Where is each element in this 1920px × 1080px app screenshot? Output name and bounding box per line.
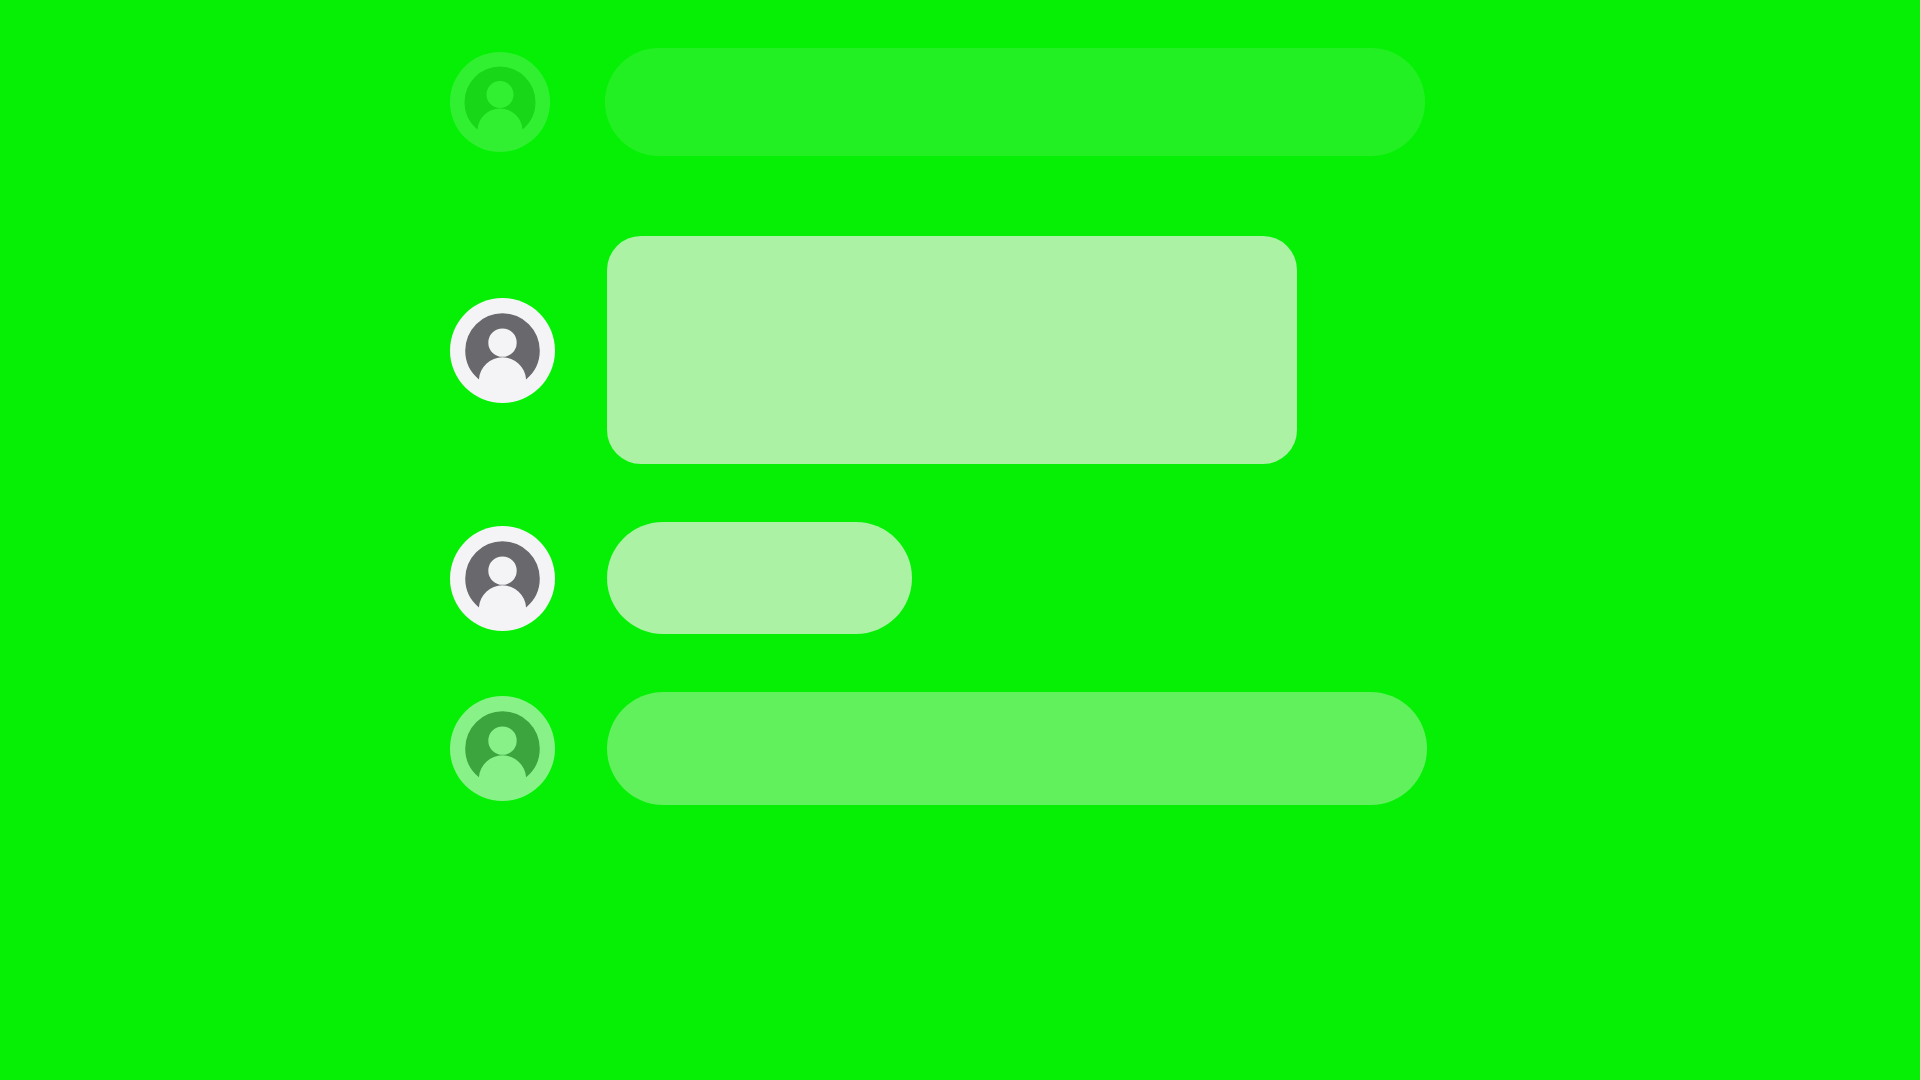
button[interactable] — [605, 48, 1425, 156]
button[interactable] — [607, 692, 1427, 805]
button[interactable] — [607, 236, 1297, 464]
button[interactable]: Contact avatar — [450, 236, 1297, 464]
button[interactable]: Contact avatar — [450, 692, 1427, 805]
button[interactable]: Contact avatar — [450, 298, 555, 403]
button[interactable] — [607, 522, 912, 634]
button[interactable]: Contact avatar — [450, 526, 555, 631]
button[interactable]: Contact avatar — [450, 522, 912, 634]
button[interactable]: Contact avatar — [450, 52, 550, 152]
button[interactable]: Contact avatar — [450, 48, 1425, 156]
button[interactable]: Contact avatar — [450, 696, 555, 801]
